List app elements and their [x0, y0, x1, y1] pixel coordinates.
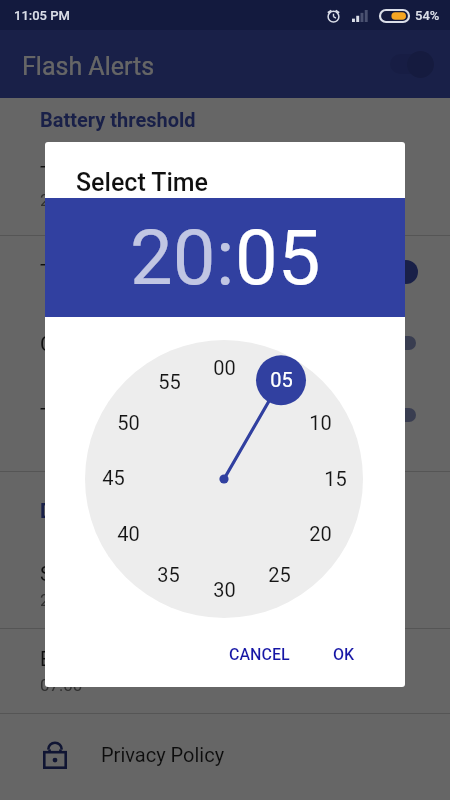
- button[interactable]: Turn on flash alerts: [378, 259, 418, 285]
- staticText: 07:00: [40, 675, 83, 695]
- staticText: Privacy Policy: [101, 743, 225, 766]
- staticText: 10: [309, 411, 332, 434]
- button[interactable]: 20: [130, 213, 216, 302]
- staticText: Do not disturb: [40, 499, 167, 522]
- button[interactable]: OK: [325, 636, 363, 673]
- button[interactable]: Test flash: [0, 379, 450, 451]
- button[interactable]: Toggle flash alerts: [386, 49, 434, 79]
- staticText: 54%: [415, 8, 440, 23]
- staticText: 15: [324, 467, 347, 490]
- staticText: 35: [157, 563, 180, 586]
- staticText: 45: [102, 466, 125, 489]
- staticText: 30: [213, 578, 236, 601]
- staticText: 20:05: [40, 590, 83, 610]
- staticText: Battery threshold: [40, 108, 196, 131]
- staticText: 55: [158, 370, 181, 393]
- button[interactable]: Threshold value: [0, 136, 450, 235]
- staticText: Flash Alerts: [22, 52, 155, 81]
- staticText: :: [216, 213, 235, 302]
- staticText: Select Time: [76, 168, 209, 197]
- staticText: CANCEL: [229, 645, 290, 664]
- staticText: 05: [270, 368, 293, 391]
- button[interactable]: Turn on flash alerts: [0, 236, 450, 307]
- staticText: 40: [117, 522, 140, 545]
- staticText: End time: [40, 647, 119, 670]
- button[interactable]: Privacy Policy: [0, 714, 450, 800]
- staticText: 11:05 PM: [14, 8, 70, 23]
- staticText: OK: [333, 645, 355, 664]
- button[interactable]: 05: [235, 213, 321, 302]
- staticText: 00: [213, 356, 236, 379]
- button[interactable]: Call alerts: [0, 307, 450, 379]
- staticText: 20%: [40, 190, 72, 210]
- staticText: Threshold value: [40, 162, 181, 185]
- button[interactable]: End time: [0, 629, 450, 713]
- button[interactable]: Call alerts: [378, 330, 418, 356]
- staticText: Start time: [40, 562, 128, 585]
- staticText: 25: [268, 563, 291, 586]
- button[interactable]: Test flash: [378, 402, 418, 428]
- staticText: Turn on flash alerts: [40, 260, 212, 283]
- staticText: Call alerts: [40, 332, 130, 355]
- button[interactable]: CANCEL: [221, 636, 298, 673]
- staticText: Test flash: [40, 404, 127, 427]
- button[interactable]: Start time: [0, 544, 450, 628]
- staticText: 20: [309, 522, 332, 545]
- staticText: 50: [117, 411, 140, 434]
